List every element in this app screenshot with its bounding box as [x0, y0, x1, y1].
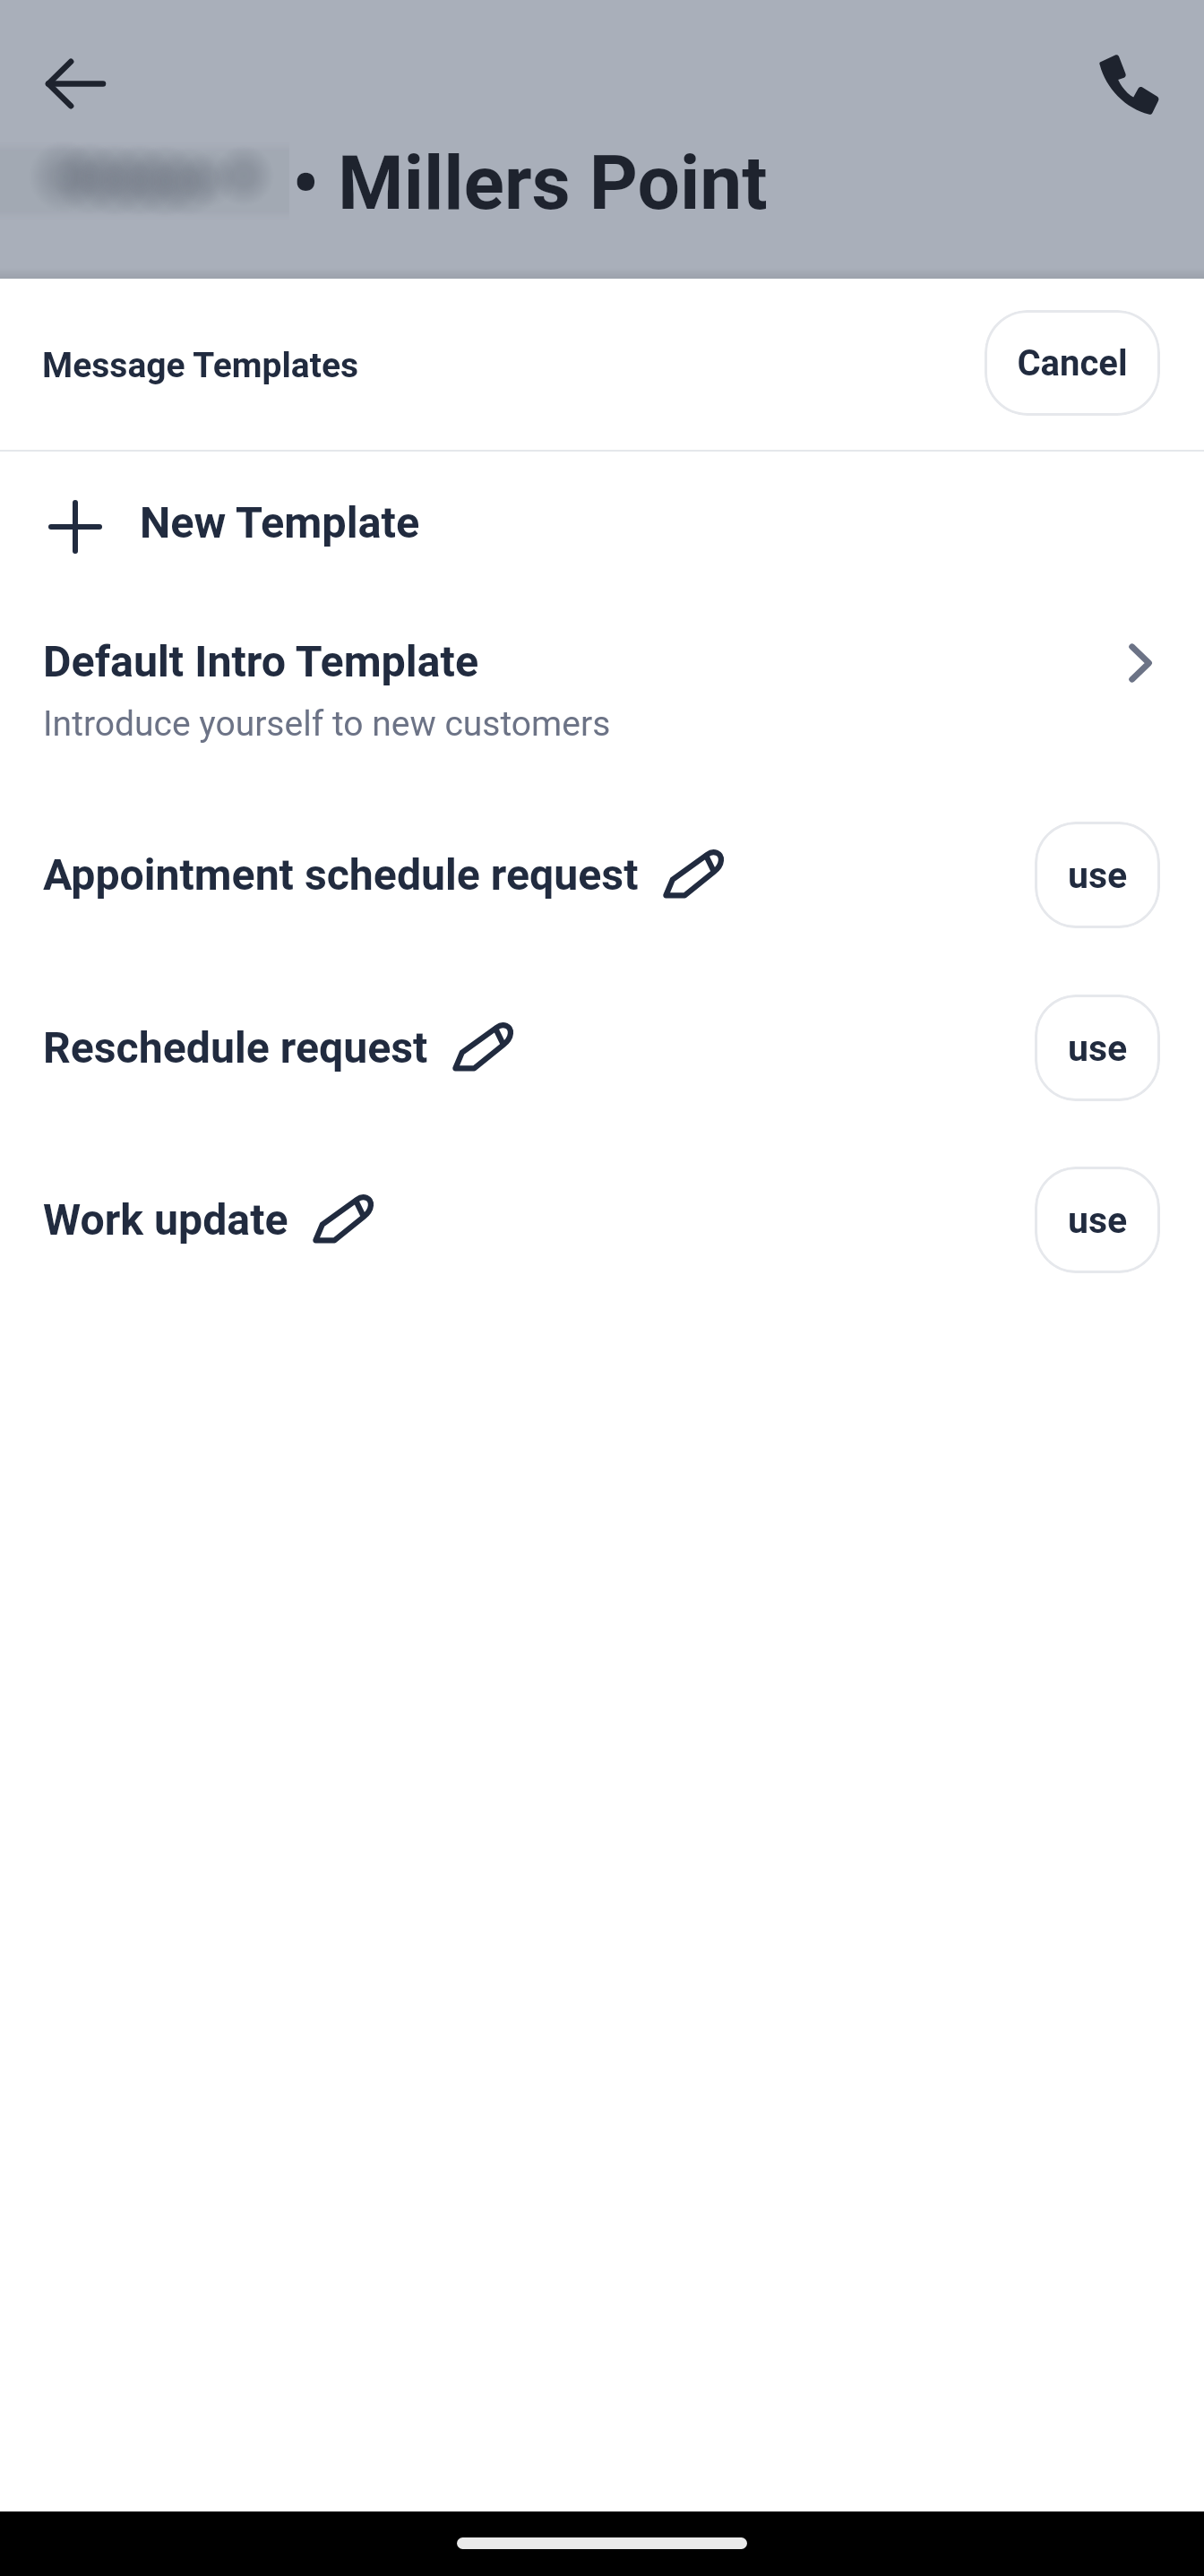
staticText: Introduce yourself to new customers: [43, 703, 611, 745]
staticText: New Template: [140, 497, 420, 548]
button[interactable]: use: [1035, 822, 1160, 928]
staticText: Message Templates: [42, 345, 359, 386]
button[interactable]: use: [1035, 995, 1160, 1101]
staticText: • Millers Point: [292, 139, 768, 227]
staticText: use: [1068, 1199, 1128, 1242]
staticText: Cancel: [1017, 342, 1128, 384]
button[interactable]: Back: [21, 30, 129, 137]
button[interactable]: use: [1035, 1167, 1160, 1273]
button[interactable]: Call: [1075, 30, 1182, 138]
button[interactable]: New Template: [0, 451, 1204, 594]
button[interactable]: Cancel: [985, 310, 1160, 416]
button[interactable]: Edit Reschedule request: [452, 1017, 513, 1078]
staticText: use: [1068, 854, 1128, 897]
button[interactable]: Appointment schedule request: [43, 844, 1035, 905]
button[interactable]: Work update: [43, 1189, 1035, 1250]
staticText: Appointment schedule request: [43, 849, 639, 900]
button[interactable]: Edit Appointment schedule request: [663, 844, 724, 905]
staticText: Default Intro Template: [43, 636, 479, 687]
staticText: use: [1068, 1027, 1128, 1070]
button[interactable]: Default Intro Template: [0, 618, 1204, 766]
staticText: Reschedule request: [43, 1022, 428, 1073]
button[interactable]: Reschedule request: [43, 1017, 1035, 1078]
button[interactable]: Edit Work update: [313, 1189, 374, 1250]
staticText: Work update: [43, 1194, 288, 1245]
